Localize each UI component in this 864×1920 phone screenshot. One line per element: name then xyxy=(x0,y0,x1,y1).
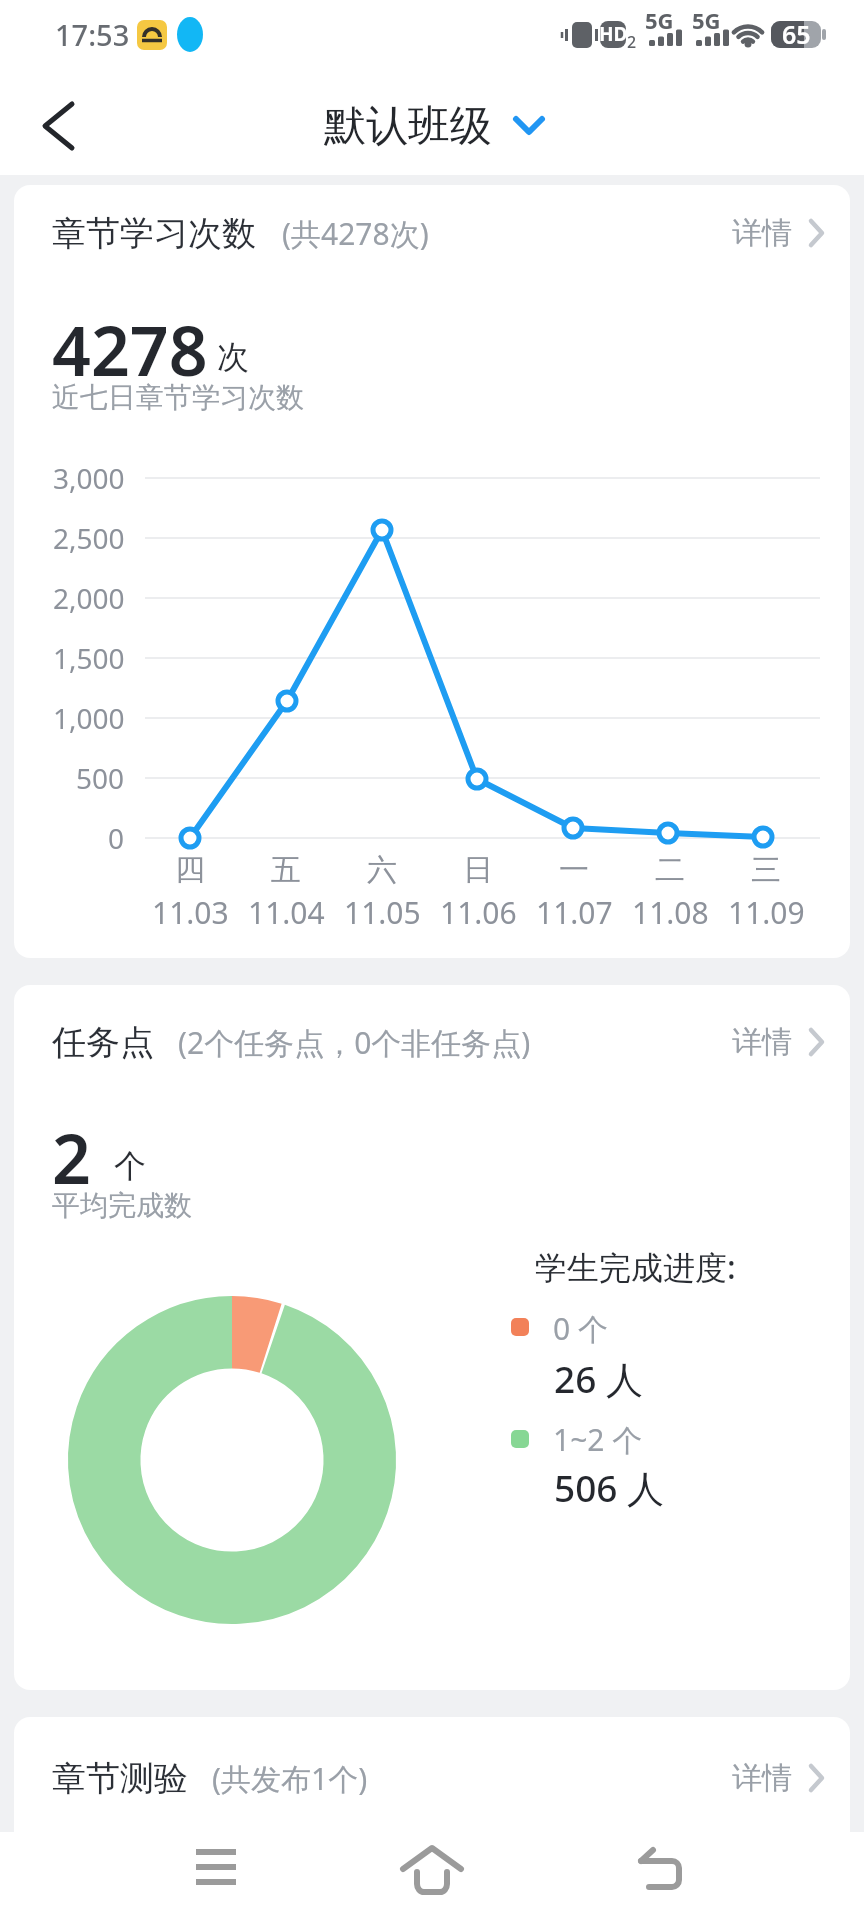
button[interactable]: 详情 xyxy=(732,1750,826,1806)
button[interactable] xyxy=(24,96,94,156)
staticText: 日 xyxy=(463,851,493,889)
staticText: 11.03 xyxy=(152,892,229,933)
staticText: 26 人 xyxy=(554,1353,643,1404)
staticText: 章节测验 xyxy=(52,1757,188,1800)
staticText: 默认班级 xyxy=(324,100,492,153)
staticText: 近七日章节学习次数 xyxy=(52,380,304,415)
button[interactable] xyxy=(620,1836,700,1916)
staticText: 章节学习次数 xyxy=(52,212,256,255)
staticText: 506 人 xyxy=(554,1462,665,1513)
staticText: 11.04 xyxy=(248,892,325,933)
staticText: 11.06 xyxy=(440,892,517,933)
staticText: 0 xyxy=(108,819,125,857)
staticText: 1,500 xyxy=(53,639,125,677)
staticText: 5G xyxy=(692,5,721,35)
staticText: (共发布1个) xyxy=(212,1758,368,1799)
staticText: 2,000 xyxy=(53,579,125,617)
staticText: 次 xyxy=(217,337,249,377)
staticText: 三 xyxy=(751,851,781,889)
staticText: 1~2 个 xyxy=(553,1419,643,1460)
staticText: 任务点 xyxy=(52,1021,154,1064)
button[interactable] xyxy=(176,1836,256,1916)
staticText: 四 xyxy=(175,851,205,889)
staticText: 11.09 xyxy=(728,892,805,933)
button[interactable] xyxy=(392,1836,472,1916)
staticText: 五 xyxy=(271,851,301,889)
staticText: 17:53 xyxy=(55,15,130,54)
staticText: 一 xyxy=(559,851,589,889)
staticText: 500 xyxy=(76,759,125,797)
staticText: 详情 xyxy=(732,214,792,252)
staticText: 详情 xyxy=(732,1023,792,1061)
staticText: 4278 xyxy=(52,303,208,396)
staticText: 2 xyxy=(52,1111,91,1204)
staticText: 1,000 xyxy=(53,699,125,737)
staticText: 11.07 xyxy=(536,892,613,933)
staticText: 详情 xyxy=(732,1759,792,1797)
staticText: HD xyxy=(599,21,628,47)
staticText: 0 个 xyxy=(553,1308,608,1349)
staticText: 65 xyxy=(782,17,811,51)
staticText: 11.05 xyxy=(344,892,421,933)
staticText: 2 xyxy=(627,31,637,53)
staticText: (共4278次) xyxy=(282,213,429,254)
staticText: 2,500 xyxy=(53,519,125,557)
staticText: 二 xyxy=(655,851,685,889)
button[interactable]: 详情 xyxy=(732,1014,826,1070)
staticText: 5G xyxy=(645,5,674,35)
staticText: 3,000 xyxy=(53,459,125,497)
staticText: 11.08 xyxy=(632,892,709,933)
button[interactable]: 详情 xyxy=(732,205,826,261)
staticText: 平均完成数 xyxy=(52,1188,192,1223)
staticText: 学生完成进度: xyxy=(535,1245,736,1289)
staticText: 六 xyxy=(367,851,397,889)
button[interactable]: 默认班级 xyxy=(300,96,560,156)
staticText: 个 xyxy=(114,1146,146,1186)
staticText: (2个任务点，0个非任务点) xyxy=(178,1022,531,1063)
